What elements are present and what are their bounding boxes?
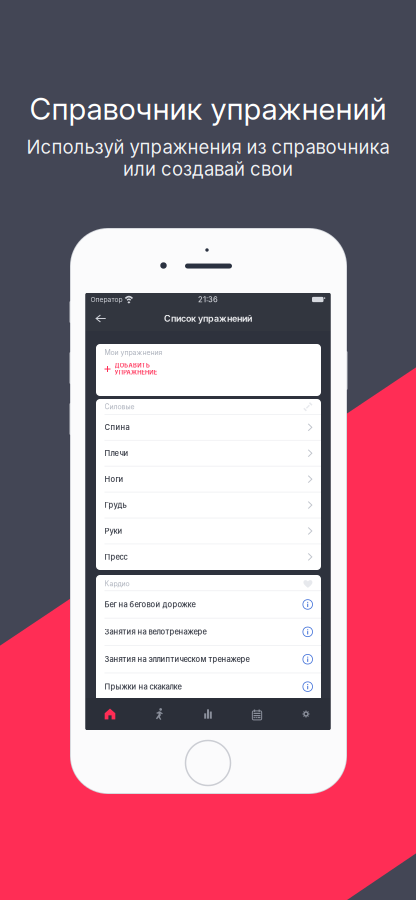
button[interactable]: Statistics [183,698,232,730]
button[interactable]: Ноги [96,466,321,492]
staticText: Список упражнений [164,313,252,324]
button[interactable]: Грудь [96,492,321,518]
staticText: Силовые [104,402,134,411]
button[interactable]: Бег на беговой дорожке [96,590,321,618]
staticText: ДОБАВИТЬ УПРАЖНЕНИЕ [114,362,157,376]
staticText: Занятия на эллиптическом тренажере [104,655,249,664]
staticText: Плечи [104,449,128,458]
button[interactable]: Прыжки на скакалке [96,673,321,700]
button[interactable]: Back [88,306,112,331]
staticText: Пресс [104,552,127,561]
staticText: Спина [104,423,129,432]
staticText: Мои упражнения [104,348,162,357]
button[interactable]: Пресс [96,544,321,569]
staticText: Бег на беговой дорожке [104,600,195,609]
staticText: Прыжки на скакалке [104,682,181,691]
staticText: 21:36 [198,295,218,304]
staticText: или создавай свои [123,158,293,180]
button[interactable]: Плечи [96,440,321,466]
staticText: Кардио [104,579,129,588]
staticText: Оператор [90,295,122,304]
button[interactable]: Занятия на эллиптическом тренажере [96,645,321,673]
button[interactable]: Занятия на велотренажере [96,618,321,645]
staticText: Ноги [104,474,123,484]
staticText: Занятия на велотренажере [104,627,206,636]
button[interactable]: Руки [96,518,321,544]
button[interactable]: Спина [96,414,321,440]
button[interactable]: ДОБАВИТЬ УПРАЖНЕНИЕ [96,361,321,377]
button[interactable]: Calendar [232,698,281,730]
staticText: Руки [104,526,122,536]
staticText: Грудь [104,500,126,510]
staticText: Используй упражнения из справочника [26,136,389,158]
button[interactable]: Workouts [134,698,183,730]
button[interactable]: Settings [281,698,330,730]
button[interactable]: Home [85,698,134,730]
staticText: Справочник упражнений [29,91,386,127]
